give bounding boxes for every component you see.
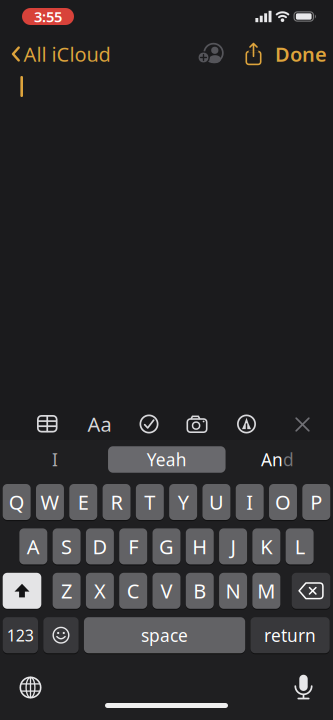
staticText: Z [61,577,72,604]
button[interactable]: Insert table [37,415,58,433]
staticText: R [111,489,123,515]
button[interactable]: P [302,484,330,520]
staticText: return [264,624,316,647]
staticText: S [61,533,72,560]
staticText: T [144,489,155,515]
button[interactable]: M [252,573,280,609]
button[interactable]: Shift [3,573,41,609]
button[interactable]: Checklist [139,414,158,433]
staticText: N [226,577,241,604]
staticText: I [52,448,58,471]
staticText: Done [275,41,327,67]
button[interactable]: L [286,528,314,564]
button[interactable]: Done [257,37,327,71]
button[interactable]: I [5,446,105,473]
button[interactable]: V [152,573,180,609]
button[interactable]: And [227,446,327,473]
button[interactable]: Dictate [294,675,313,699]
button[interactable]: R [103,484,131,520]
staticText: V [160,577,172,604]
button[interactable]: Delete [292,573,330,609]
staticText: F [128,533,138,560]
staticText: Yeah [147,448,187,471]
button[interactable]: Space [84,617,245,653]
button[interactable]: K [252,528,280,564]
staticText: space [141,624,188,647]
button[interactable]: O [269,484,297,520]
button[interactable]: Text formatting [87,411,111,437]
button[interactable]: Q [3,484,31,520]
button[interactable]: Recording indicator, 3:55 [22,8,74,25]
button[interactable]: Emoji [43,617,79,653]
button[interactable]: D [86,528,114,564]
staticText: I [246,489,253,515]
button[interactable]: X [86,573,114,609]
button[interactable]: G [152,528,180,564]
button[interactable]: Next keyboard [19,676,41,698]
button[interactable]: W [36,484,64,520]
staticText: J [231,533,236,560]
button[interactable]: F [119,528,147,564]
button[interactable]: H [186,528,214,564]
staticText: Y [178,489,189,515]
staticText: An [261,448,283,471]
staticText: 123 [7,625,34,646]
staticText: O [275,489,291,515]
staticText: E [78,489,89,515]
button[interactable]: Insert photo or video [186,415,208,433]
button[interactable]: Return [250,617,330,653]
staticText: Q [9,489,25,515]
staticText: 3:55 [34,7,62,26]
button[interactable]: A [19,528,47,564]
button[interactable]: Numbers [3,617,38,653]
button[interactable]: U [202,484,230,520]
button[interactable]: Back, All iCloud [12,37,110,71]
staticText: L [295,533,305,560]
staticText: U [209,489,224,515]
staticText: K [260,533,272,560]
staticText: C [127,577,140,604]
staticText: G [159,533,174,560]
staticText: W [40,489,59,515]
staticText: d [283,448,294,471]
button[interactable]: I [236,484,264,520]
staticText: H [192,533,207,560]
staticText: X [94,577,106,604]
staticText: All iCloud [23,41,110,67]
staticText: P [310,489,322,515]
button[interactable]: Share note with people [199,41,226,66]
button[interactable]: Dismiss toolbar [295,417,310,432]
staticText: M [257,577,275,604]
button[interactable]: S [53,528,81,564]
button[interactable]: Yeah [108,446,226,473]
button[interactable]: J [219,528,247,564]
button[interactable]: Markup [237,414,256,433]
staticText: D [92,533,107,560]
button[interactable]: E [69,484,97,520]
button[interactable]: C [119,573,147,609]
staticText: A [27,533,40,560]
staticText: Aa [87,411,111,437]
staticText: B [193,577,206,604]
button[interactable]: B [186,573,214,609]
button[interactable]: Y [169,484,197,520]
button[interactable]: Share [244,42,262,65]
button[interactable]: Z [53,573,81,609]
button[interactable]: N [219,573,247,609]
button[interactable]: T [136,484,164,520]
